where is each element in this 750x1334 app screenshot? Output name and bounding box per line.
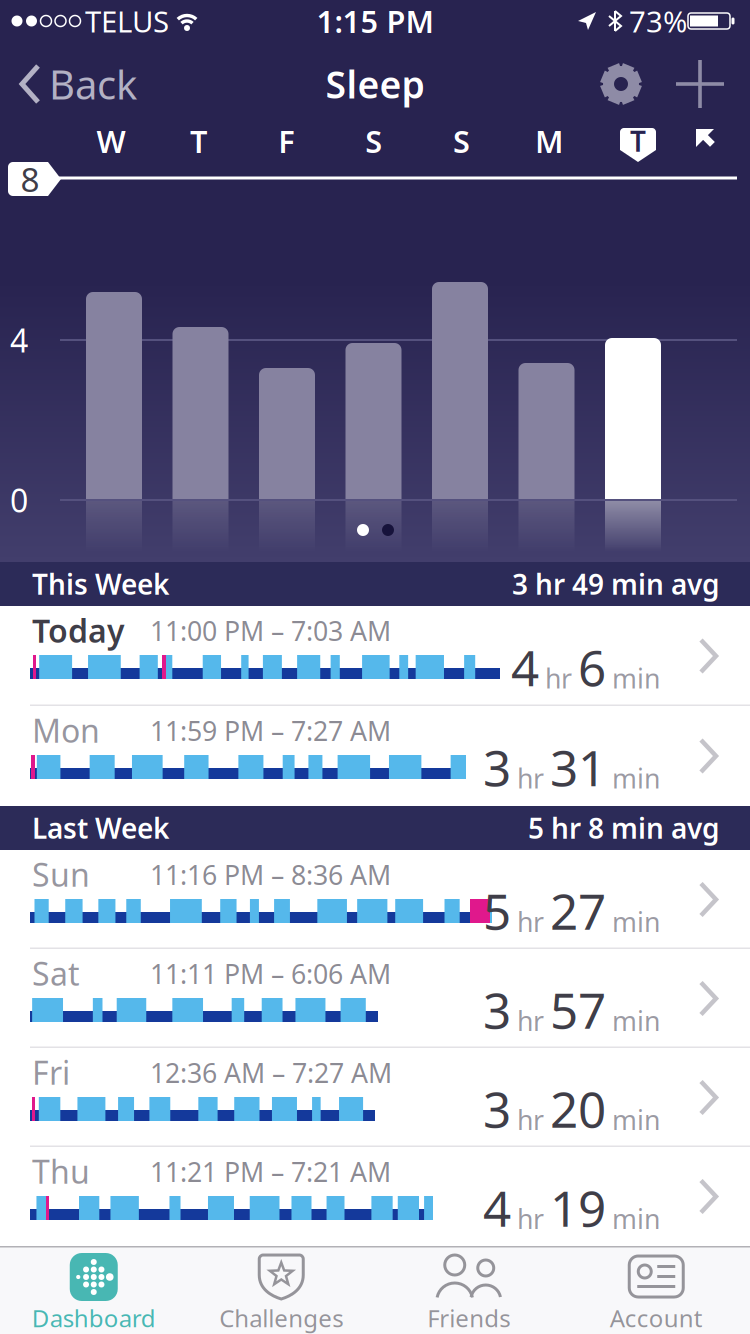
staticText: 3 [483, 977, 511, 1042]
button[interactable]: Back [16, 62, 146, 106]
staticText: T [630, 122, 646, 160]
staticText: hr [517, 1102, 544, 1137]
button[interactable]: Today [0, 606, 750, 706]
button[interactable]: Account [562, 1246, 750, 1334]
staticText: 19 [550, 1175, 606, 1240]
staticText: T [190, 121, 207, 161]
staticText: 11:11 PM – 6:06 AM [150, 956, 391, 991]
staticText: 57 [550, 977, 606, 1042]
staticText: 11:00 PM – 7:03 AM [150, 613, 391, 648]
staticText: 3 [483, 734, 511, 800]
staticText: Last Week [32, 809, 169, 847]
staticText: min [612, 1102, 660, 1137]
staticText: 1:15 PM [316, 1, 433, 41]
staticText: hr [517, 1003, 544, 1038]
staticText: Account [610, 1302, 703, 1334]
staticText: M [535, 121, 563, 161]
staticText: S [365, 121, 382, 161]
staticText: 0 [10, 479, 28, 521]
staticText: Sun [32, 853, 90, 895]
staticText: Challenges [219, 1302, 343, 1334]
button[interactable]: Mon [0, 706, 750, 806]
button[interactable] [676, 60, 724, 108]
staticText: min [612, 1201, 660, 1236]
staticText: Today [32, 609, 125, 651]
button[interactable] [688, 121, 722, 155]
staticText: Friends [427, 1302, 510, 1334]
staticText: hr [517, 904, 544, 939]
button[interactable]: Sat [0, 949, 750, 1048]
button[interactable]: Friends [375, 1246, 562, 1334]
button[interactable] [597, 60, 645, 108]
staticText: 11:21 PM – 7:21 AM [150, 1154, 391, 1189]
staticText: hr [517, 760, 544, 796]
staticText: This Week [32, 565, 169, 603]
staticText: Dashboard [32, 1302, 156, 1334]
staticText: 20 [550, 1076, 606, 1141]
staticText: 11:16 PM – 8:36 AM [150, 857, 391, 892]
staticText: 12:36 AM – 7:27 AM [150, 1055, 392, 1090]
button[interactable]: Dashboard [0, 1246, 187, 1334]
staticText: S [453, 121, 470, 161]
staticText: 27 [550, 878, 606, 943]
staticText: 4 [483, 1175, 511, 1240]
staticText: 3 [483, 1076, 511, 1141]
staticText: Sleep [325, 59, 424, 109]
staticText: hr [517, 1201, 544, 1236]
button[interactable]: T [616, 119, 660, 163]
staticText: Fri [32, 1051, 70, 1093]
button[interactable]: S [439, 119, 483, 163]
staticText: 5 [483, 878, 511, 943]
staticText: W [96, 121, 125, 161]
button[interactable]: Sun [0, 850, 750, 949]
button[interactable]: Challenges [187, 1246, 375, 1334]
button[interactable]: T [177, 119, 221, 163]
staticText: 3 hr 49 min avg [512, 565, 720, 603]
staticText: 31 [550, 734, 606, 800]
staticText: 8 [20, 157, 39, 201]
staticText: 11:59 PM – 7:27 AM [150, 713, 391, 748]
staticText: Back [49, 57, 137, 110]
staticText: hr [545, 660, 572, 696]
staticText: min [612, 1003, 660, 1038]
button[interactable]: Fri [0, 1048, 750, 1147]
button[interactable]: F [264, 119, 308, 163]
staticText: 6 [578, 634, 606, 700]
staticText: 5 hr 8 min avg [528, 809, 720, 847]
button[interactable]: S [352, 119, 396, 163]
button[interactable]: M [527, 119, 571, 163]
button[interactable]: Thu [0, 1147, 750, 1246]
staticText: Mon [32, 709, 100, 751]
staticText: min [612, 660, 660, 696]
staticText: Sat [32, 952, 80, 994]
staticText: min [612, 760, 660, 796]
staticText: 4 [10, 319, 28, 361]
staticText: TELUS [85, 1, 169, 40]
staticText: 73% [629, 1, 687, 40]
staticText: F [278, 121, 294, 161]
staticText: min [612, 904, 660, 939]
staticText: 4 [511, 634, 539, 700]
button[interactable]: W [89, 119, 133, 163]
staticText: Thu [32, 1150, 90, 1192]
